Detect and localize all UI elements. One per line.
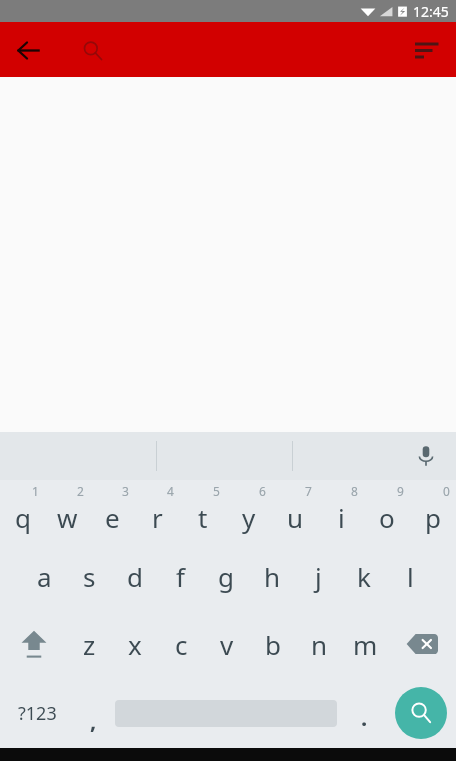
staticText: e (105, 500, 120, 535)
button[interactable]: q (0, 480, 45, 542)
staticText: 0 (443, 483, 450, 499)
staticText: x (128, 627, 142, 662)
button[interactable]: Search (72, 30, 112, 70)
staticText: t (198, 500, 208, 535)
staticText: v (220, 627, 234, 662)
staticText: 8 (351, 483, 358, 499)
staticText: 4 (167, 483, 174, 499)
staticText: ?123 (18, 701, 57, 726)
button[interactable]: h (249, 542, 295, 610)
staticText: s (83, 559, 96, 594)
button[interactable]: s (67, 542, 112, 610)
button[interactable]: m (342, 610, 388, 678)
staticText: a (37, 559, 52, 594)
staticText: 5 (213, 483, 220, 499)
button[interactable]: p (410, 480, 456, 542)
button[interactable]: k (341, 542, 387, 610)
button[interactable]: d (112, 542, 157, 610)
staticText: y (242, 500, 256, 535)
staticText: 9 (397, 483, 404, 499)
staticText: 1 (32, 483, 39, 499)
button[interactable]: g (203, 542, 249, 610)
staticText: r (152, 500, 163, 535)
button[interactable]: Search (395, 687, 447, 739)
staticText: m (353, 627, 378, 662)
staticText: i (338, 500, 345, 535)
staticText: d (127, 559, 143, 594)
staticText: , (90, 705, 97, 735)
button[interactable]: u (272, 480, 318, 542)
button[interactable]: Sort (402, 26, 450, 74)
staticText: o (379, 500, 395, 535)
staticText: 12:45 (413, 2, 449, 21)
staticText: g (218, 559, 234, 594)
staticText: z (83, 627, 96, 662)
button[interactable]: ?123 (2, 678, 72, 748)
button[interactable]: y (226, 480, 272, 542)
button[interactable]: j (295, 542, 341, 610)
staticText: . (361, 702, 368, 732)
staticText: f (176, 559, 185, 594)
staticText: 6 (259, 483, 266, 499)
button[interactable]: z (67, 610, 112, 678)
staticText: h (264, 559, 281, 594)
staticText: 2 (77, 483, 84, 499)
button[interactable]: Back (4, 26, 52, 74)
staticText: q (15, 500, 31, 535)
button[interactable]: f (157, 542, 203, 610)
staticText: w (57, 500, 78, 535)
button[interactable]: Voice input (404, 434, 448, 478)
button[interactable]: e (90, 480, 135, 542)
button[interactable]: r (135, 480, 180, 542)
staticText: b (265, 627, 281, 662)
button[interactable]: Backspace (388, 610, 456, 678)
staticText: l (407, 559, 414, 594)
staticText: c (175, 627, 188, 662)
button[interactable]: Period (342, 678, 386, 748)
staticText: 3 (122, 483, 129, 499)
button[interactable]: i (318, 480, 364, 542)
button[interactable]: a (22, 542, 67, 610)
button[interactable]: v (204, 610, 250, 678)
staticText: k (357, 559, 371, 594)
button[interactable]: o (364, 480, 410, 542)
button[interactable]: b (250, 610, 296, 678)
staticText: u (287, 500, 304, 535)
button[interactable]: t (180, 480, 226, 542)
button[interactable]: c (158, 610, 204, 678)
staticText: n (311, 627, 328, 662)
button[interactable]: x (112, 610, 158, 678)
button[interactable]: w (45, 480, 90, 542)
button[interactable]: Shift (0, 610, 67, 678)
staticText: 7 (305, 483, 312, 499)
button[interactable]: Comma (72, 678, 114, 748)
staticText: j (315, 559, 322, 594)
staticText: p (425, 500, 441, 535)
button[interactable]: l (387, 542, 433, 610)
button[interactable]: n (296, 610, 342, 678)
